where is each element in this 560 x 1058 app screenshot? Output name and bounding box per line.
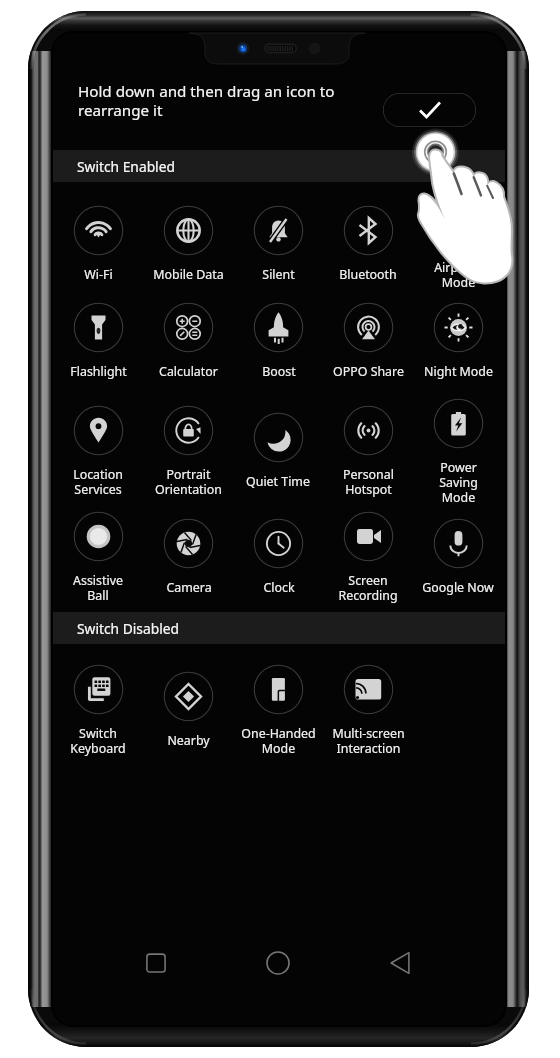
- button[interactable]: Assistive Ball: [53, 496, 143, 608]
- button[interactable]: Portrait Orientation: [143, 390, 233, 502]
- button[interactable]: Switch Enabled: [53, 150, 505, 182]
- button[interactable]: Location Services: [53, 390, 143, 502]
- button[interactable]: Silent: [233, 183, 323, 295]
- button[interactable]: Google Now: [413, 496, 503, 608]
- staticText: Hold down and then drag an icon to rearr…: [78, 81, 335, 120]
- button[interactable]: Quiet Time: [233, 390, 323, 502]
- button[interactable]: Nearby: [143, 649, 233, 761]
- staticText: Switch Keyboard: [70, 725, 126, 756]
- staticText: Mobile Data: [153, 266, 224, 283]
- staticText: Quiet Time: [246, 473, 310, 490]
- button[interactable]: Switch Disabled: [53, 612, 505, 644]
- staticText: Location Services: [73, 466, 123, 497]
- staticText: Calculator: [159, 363, 218, 380]
- button[interactable]: Recent apps: [126, 933, 186, 993]
- staticText: Clock: [263, 579, 295, 596]
- staticText: Flashlight: [70, 363, 127, 380]
- staticText: Nearby: [167, 732, 210, 749]
- button[interactable]: Boost: [233, 280, 323, 392]
- staticText: Wi-Fi: [84, 266, 113, 283]
- button[interactable]: Bluetooth: [323, 183, 413, 295]
- staticText: Switch Disabled: [77, 619, 179, 638]
- button[interactable]: Mobile Data: [143, 183, 233, 295]
- staticText: Power Saving Mode: [439, 459, 478, 505]
- button[interactable]: One-Handed Mode: [233, 649, 323, 761]
- button[interactable]: Screen Recording: [323, 496, 413, 608]
- staticText: Boost: [262, 363, 296, 380]
- staticText: One-Handed Mode: [241, 725, 316, 756]
- button[interactable]: Back: [370, 933, 430, 993]
- button[interactable]: Clock: [233, 496, 323, 608]
- staticText: Airplane Mode: [434, 259, 483, 290]
- staticText: Google Now: [422, 579, 494, 596]
- button[interactable]: Power Saving Mode: [413, 390, 503, 502]
- staticText: Night Mode: [424, 363, 493, 380]
- button[interactable]: Airplane Mode: [413, 183, 503, 295]
- button[interactable]: Camera: [143, 496, 233, 608]
- staticText: Portrait Orientation: [155, 466, 222, 497]
- staticText: Personal Hotspot: [343, 466, 394, 497]
- staticText: Switch Enabled: [77, 157, 175, 176]
- button[interactable]: Done: [383, 93, 476, 127]
- staticText: Silent: [262, 266, 295, 283]
- staticText: Screen Recording: [338, 572, 398, 603]
- button[interactable]: Multi-screen Interaction: [323, 649, 413, 761]
- button[interactable]: Switch Keyboard: [53, 649, 143, 761]
- staticText: Bluetooth: [339, 266, 397, 283]
- button[interactable]: Personal Hotspot: [323, 390, 413, 502]
- button[interactable]: Night Mode: [413, 280, 503, 392]
- staticText: Camera: [166, 579, 212, 596]
- staticText: OPPO Share: [333, 363, 404, 380]
- button[interactable]: Home: [248, 933, 308, 993]
- button[interactable]: Calculator: [143, 280, 233, 392]
- button[interactable]: OPPO Share: [323, 280, 413, 392]
- staticText: Assistive Ball: [73, 572, 123, 603]
- staticText: Multi-screen Interaction: [332, 725, 405, 756]
- button[interactable]: Flashlight: [53, 280, 143, 392]
- button[interactable]: Wi-Fi: [53, 183, 143, 295]
